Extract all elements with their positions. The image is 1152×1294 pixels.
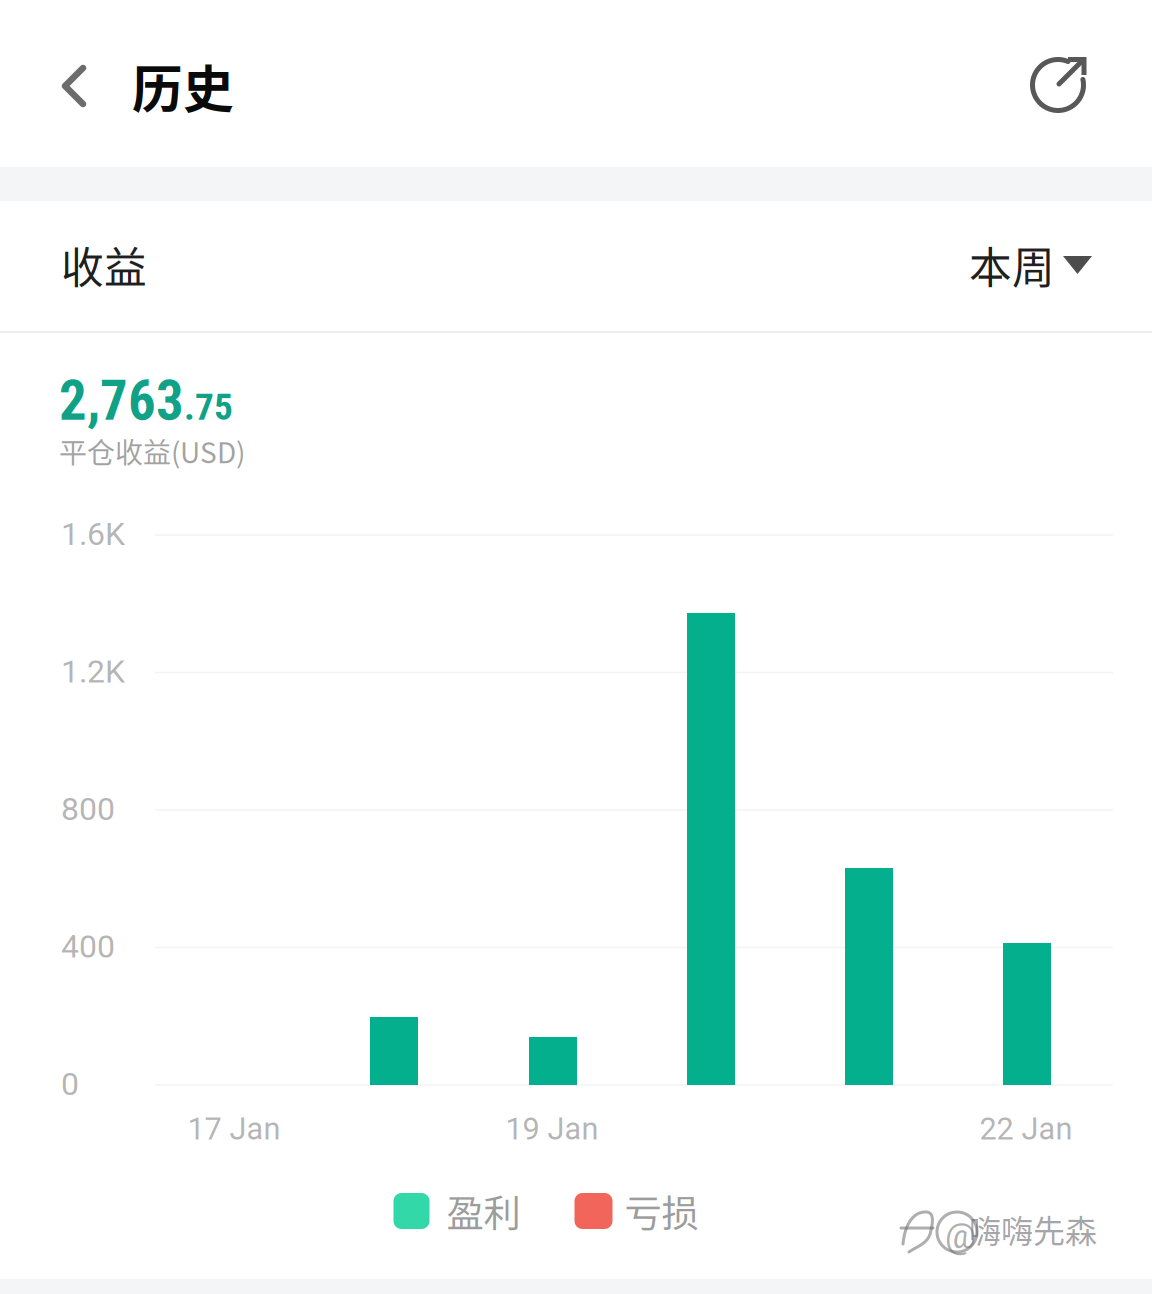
staticText: 400 (61, 928, 115, 965)
button[interactable]: Share (1001, 20, 1119, 150)
staticText: .75 (184, 385, 233, 429)
staticText: 800 (61, 790, 115, 828)
staticText: 收益 (61, 234, 147, 296)
button[interactable]: 历史 (132, 21, 292, 151)
button[interactable]: Back (26, 21, 122, 151)
staticText: 亏损 (624, 1184, 698, 1238)
staticText: 盈利 (446, 1184, 520, 1238)
staticText: 0 (61, 1065, 79, 1103)
staticText: @ (945, 1216, 976, 1257)
button[interactable]: 本周 (852, 213, 1092, 317)
staticText: 历史 (132, 49, 234, 123)
staticText: 17 Jan (187, 1111, 280, 1147)
staticText: 1.6K (61, 515, 125, 553)
staticText: 嗨嗨先森 (969, 1206, 1097, 1252)
staticText: 22 Jan (979, 1111, 1072, 1147)
staticText: 本周 (969, 234, 1055, 296)
staticText: 19 Jan (505, 1111, 598, 1147)
staticText: 2,763 (59, 369, 184, 433)
staticText: 1.2K (61, 653, 125, 690)
staticText: 平仓收益(USD) (59, 431, 245, 471)
